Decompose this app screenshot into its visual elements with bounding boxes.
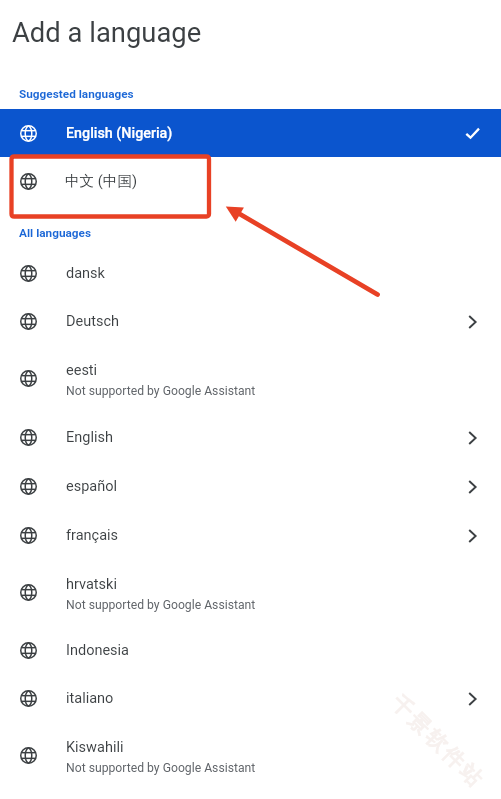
staticText: All languages xyxy=(19,226,92,240)
button[interactable]: 中文 (中国) xyxy=(0,157,501,205)
staticText: 中文 (中国) xyxy=(65,172,138,190)
staticText: Kiswahili xyxy=(66,739,124,756)
button[interactable]: eesti xyxy=(0,345,501,412)
button[interactable]: dansk xyxy=(0,249,501,298)
staticText: español xyxy=(66,478,118,495)
staticText: Indonesia xyxy=(66,642,129,659)
staticText: Suggested languages xyxy=(19,87,134,101)
staticText: English xyxy=(66,429,113,446)
button[interactable]: español xyxy=(0,462,501,511)
staticText: Deutsch xyxy=(66,313,120,330)
staticText: eesti xyxy=(66,362,98,379)
button[interactable]: français xyxy=(0,511,501,560)
staticText: 千景软件站 xyxy=(385,689,488,793)
button[interactable]: Kiswahili xyxy=(0,722,501,789)
button[interactable]: English (Nigeria) xyxy=(0,109,501,157)
button[interactable]: Deutsch xyxy=(0,297,501,346)
other: Selected xyxy=(464,125,481,142)
button[interactable]: English xyxy=(0,413,501,462)
staticText: Not supported by Google Assistant xyxy=(66,384,256,398)
button[interactable]: hrvatski xyxy=(0,559,501,626)
staticText: English (Nigeria) xyxy=(66,125,173,142)
staticText: français xyxy=(66,527,119,544)
button[interactable]: Indonesia xyxy=(0,626,501,675)
staticText: Add a language xyxy=(12,17,202,49)
staticText: Not supported by Google Assistant xyxy=(66,598,256,612)
button[interactable]: italiano xyxy=(0,674,501,723)
staticText: Not supported by Google Assistant xyxy=(66,761,256,775)
staticText: italiano xyxy=(66,690,114,707)
staticText: hrvatski xyxy=(66,576,117,593)
staticText: dansk xyxy=(66,265,105,282)
